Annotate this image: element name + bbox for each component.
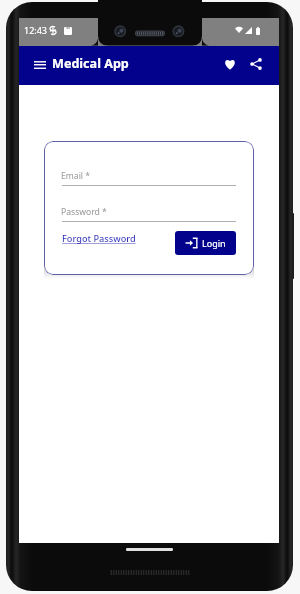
staticText: Email * <box>61 170 91 182</box>
staticText: 12:43 <box>24 24 48 36</box>
staticText: Login <box>202 237 226 249</box>
staticText: Medical App <box>52 55 129 72</box>
staticText: Forgot Password <box>62 232 136 245</box>
button[interactable]: Login <box>175 231 236 255</box>
button[interactable]: Share <box>245 53 267 75</box>
button[interactable]: Open navigation menu <box>27 54 52 76</box>
button[interactable]: Favorite <box>219 53 241 75</box>
staticText: Password * <box>61 206 107 218</box>
button[interactable]: Forgot Password <box>62 229 136 248</box>
